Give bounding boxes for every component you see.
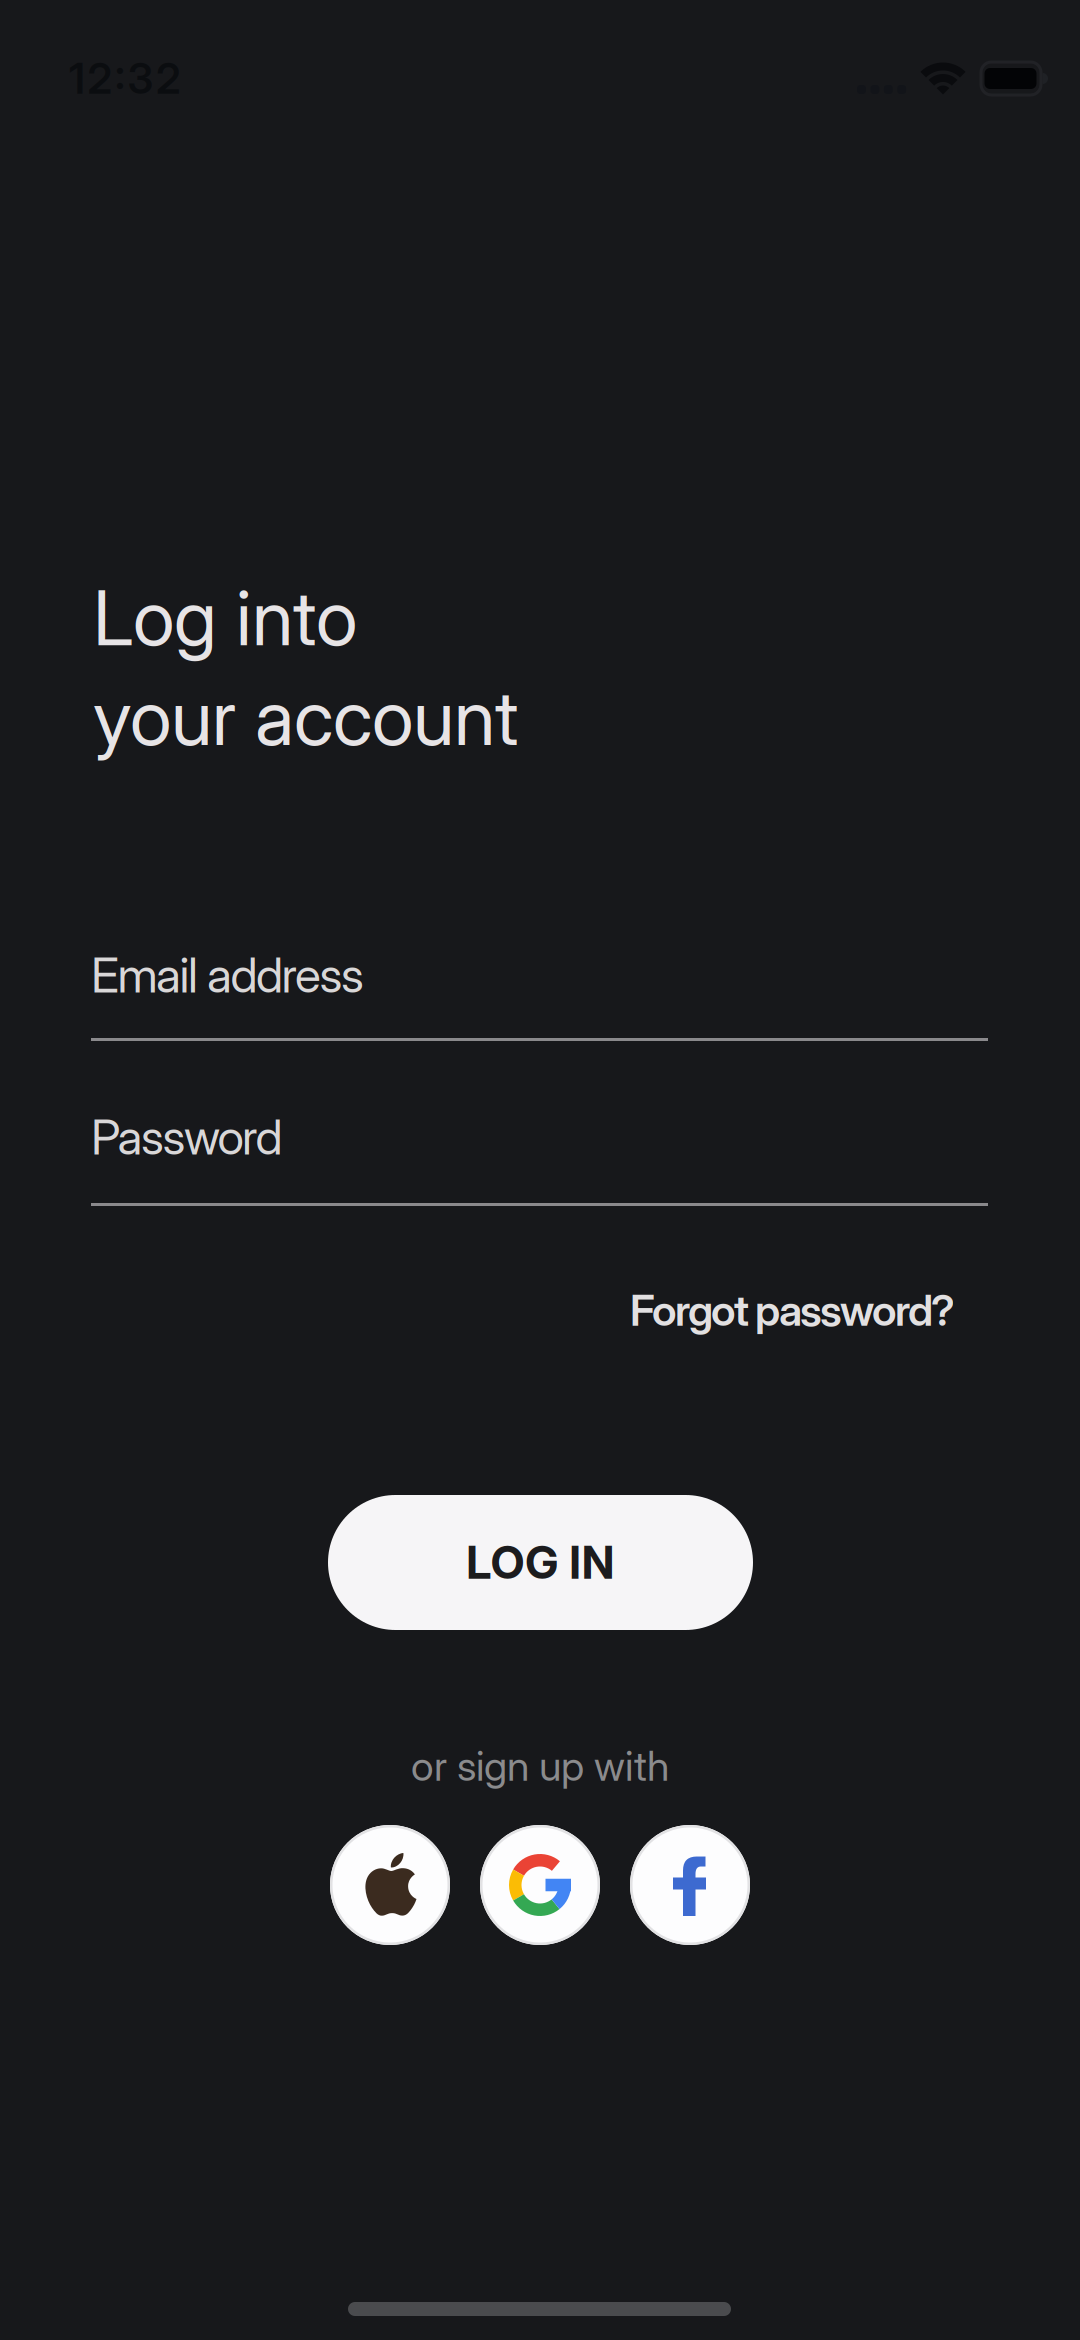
staticText: 12:32 xyxy=(69,53,181,104)
staticText: Email address xyxy=(91,946,364,1004)
button[interactable]: Sign up with Apple xyxy=(330,1825,450,1945)
staticText: Forgot password? xyxy=(630,1284,955,1336)
button[interactable]: Sign up with Google xyxy=(480,1825,600,1945)
staticText: LOG IN xyxy=(466,1535,615,1590)
button[interactable]: LOG IN xyxy=(328,1495,753,1630)
staticText: or sign up with xyxy=(411,1741,669,1791)
button[interactable]: Forgot password? xyxy=(630,1284,955,1336)
staticText: Password xyxy=(91,1108,282,1166)
staticText: Log into your account xyxy=(93,572,518,763)
button[interactable]: Sign up with Facebook xyxy=(630,1825,750,1945)
